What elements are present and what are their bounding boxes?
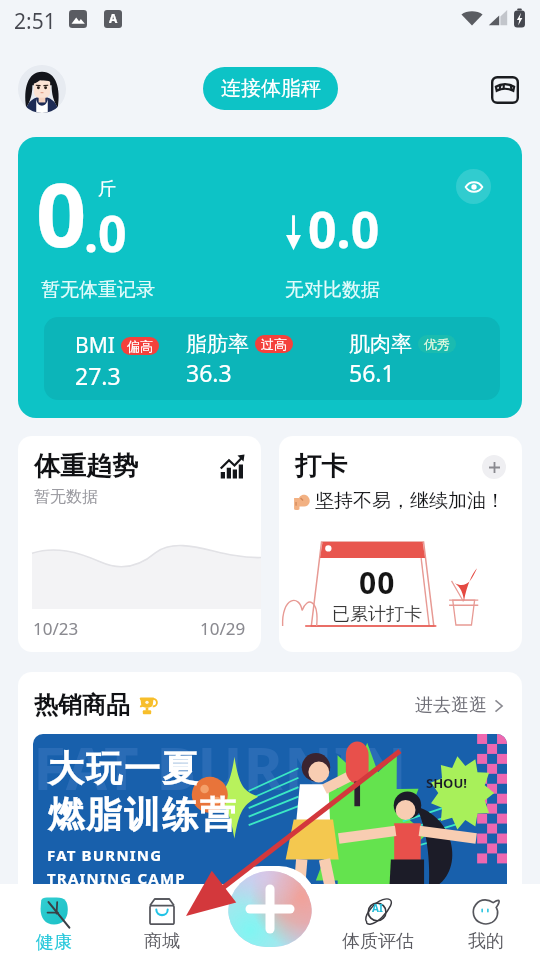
staticText: 商城 — [144, 930, 180, 953]
staticText: 0.0 — [308, 195, 380, 263]
staticText: 打卡 — [295, 450, 347, 483]
staticText: 过高 — [261, 336, 287, 352]
staticText: 进去逛逛 — [415, 694, 487, 717]
staticText: 暂无体重记录 — [41, 278, 155, 302]
staticText: 燃脂训练营 — [47, 792, 237, 837]
staticText: 脂肪率 — [186, 331, 249, 357]
button[interactable]: Add check-in — [482, 455, 506, 479]
button[interactable]: Profile — [18, 65, 66, 113]
staticText: TRAINING CAMP — [47, 868, 186, 888]
staticText: SHOU! — [426, 774, 467, 792]
button[interactable]: Add record — [228, 871, 312, 947]
staticText: 暂无数据 — [34, 487, 98, 507]
staticText: 27.3 — [75, 360, 121, 391]
staticText: 已累计打卡 — [332, 603, 422, 626]
staticText: 10/29 — [200, 617, 246, 640]
button[interactable]: 进去逛逛 — [415, 694, 506, 717]
staticText: .0 — [84, 199, 127, 267]
staticText: 连接体脂秤 — [221, 76, 321, 101]
staticText: 肌肉率 — [349, 331, 412, 357]
staticText: 热销商品 — [34, 690, 130, 720]
button[interactable]: 体重趋势 — [18, 436, 261, 652]
staticText: 大玩一夏 — [47, 746, 199, 791]
staticText: A — [109, 10, 118, 26]
staticText: 10/23 — [33, 617, 79, 640]
staticText: 健康 — [36, 931, 72, 954]
staticText: 体重趋势 — [34, 450, 138, 483]
staticText: 偏高 — [127, 338, 153, 354]
button[interactable]: Scale device — [488, 73, 521, 106]
staticText: 00 — [359, 562, 396, 603]
staticText: 56.1 — [349, 357, 395, 388]
staticText: FAT BURNING — [47, 845, 163, 865]
staticText: 2:51 — [14, 7, 56, 36]
button[interactable]: 连接体脂秤 — [203, 67, 338, 110]
button[interactable]: 我的 — [432, 884, 540, 960]
staticText: 坚持不易，继续加油！ — [315, 489, 505, 513]
button[interactable]: Toggle visibility — [18, 137, 522, 418]
button[interactable]: FAT BURNIN — [33, 734, 507, 924]
staticText: 斤 — [98, 178, 116, 201]
staticText: 体质评估 — [342, 930, 414, 953]
staticText: BMI — [75, 331, 115, 360]
button[interactable]: AI — [324, 884, 432, 960]
button[interactable]: 打卡 — [279, 436, 522, 652]
button[interactable]: 商城 — [108, 884, 216, 960]
staticText: AI — [372, 901, 383, 915]
staticText: 我的 — [468, 930, 504, 953]
button[interactable]: Toggle visibility — [456, 169, 491, 204]
staticText: 优秀 — [424, 336, 450, 352]
button[interactable]: 健康 — [0, 884, 108, 960]
staticText: 0 — [36, 153, 87, 273]
staticText: 36.3 — [186, 357, 232, 388]
staticText: FAT BURNIN — [33, 734, 408, 808]
staticText: 无对比数据 — [285, 278, 380, 302]
